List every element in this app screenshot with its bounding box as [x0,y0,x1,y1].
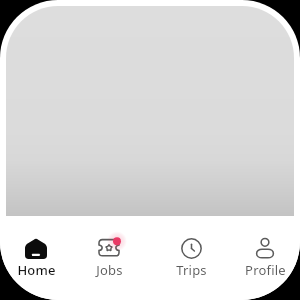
staticText: Profile [245,261,286,279]
button[interactable]: Jobs [81,216,137,279]
button[interactable]: Trips [163,216,219,279]
button[interactable]: Home [8,216,64,279]
other: Home [25,238,47,259]
other: Jobs [93,238,125,259]
button[interactable]: Profile [237,216,293,279]
other: Trips [181,238,202,259]
staticText: Trips [176,261,207,279]
staticText: Jobs [96,261,123,279]
staticText: Home [17,261,56,279]
other: Profile [256,238,274,259]
